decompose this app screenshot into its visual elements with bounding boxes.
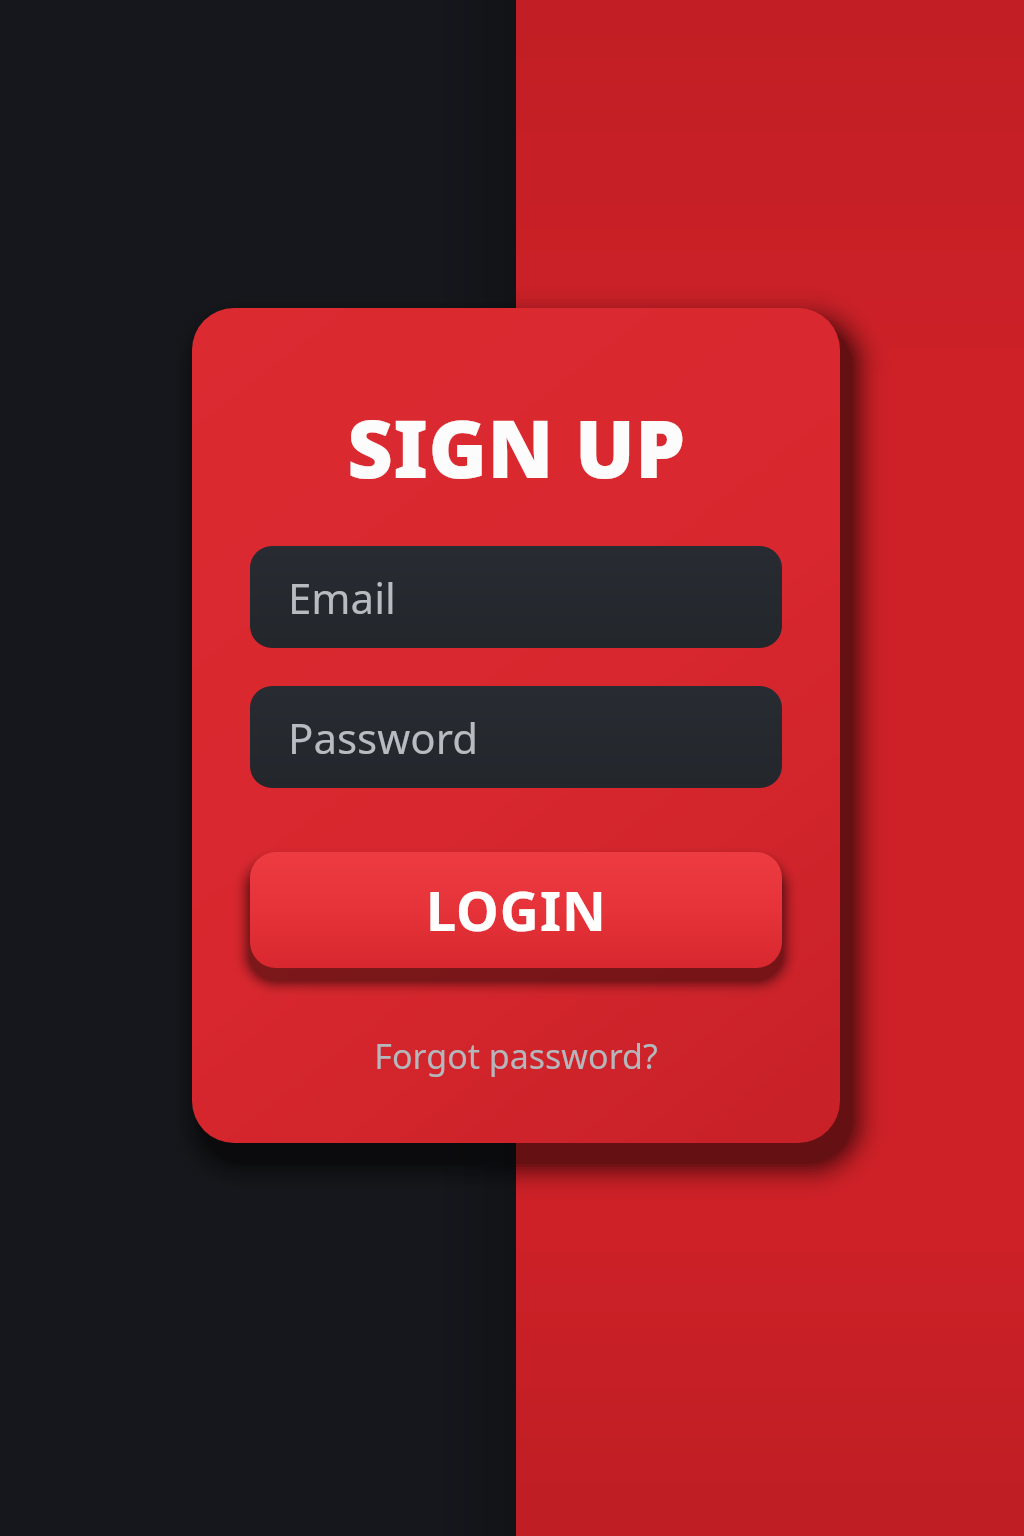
button[interactable]: Password — [250, 686, 782, 788]
staticText: SIGN UP — [347, 394, 686, 502]
staticText: Email — [288, 569, 396, 626]
button[interactable]: Forgot password? — [192, 1026, 840, 1086]
staticText: LOGIN — [426, 873, 607, 947]
button[interactable]: Email — [250, 546, 782, 648]
staticText: Password — [288, 709, 478, 766]
button[interactable]: LOGIN — [250, 852, 782, 968]
staticText: Forgot password? — [374, 1033, 658, 1079]
